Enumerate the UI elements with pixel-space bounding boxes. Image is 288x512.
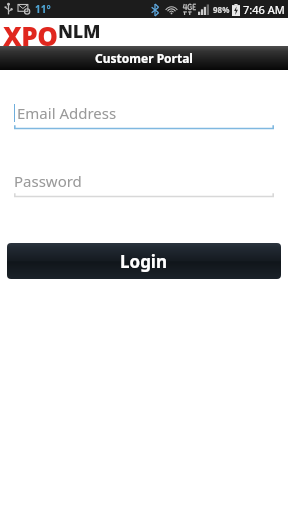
staticText: Customer Portal bbox=[95, 50, 193, 66]
staticText: 98% bbox=[213, 4, 230, 15]
staticText: 7:46 AM bbox=[243, 2, 285, 17]
staticText: 11° bbox=[35, 2, 51, 16]
button[interactable]: Password bbox=[14, 168, 274, 198]
staticText: NLM bbox=[58, 19, 100, 44]
staticText: Password bbox=[14, 171, 82, 191]
staticText: XPO bbox=[3, 18, 58, 46]
staticText: Email Address bbox=[17, 103, 117, 123]
button[interactable]: Email Address bbox=[14, 100, 274, 130]
button[interactable]: Login bbox=[7, 243, 281, 279]
staticText: Login bbox=[120, 250, 168, 273]
